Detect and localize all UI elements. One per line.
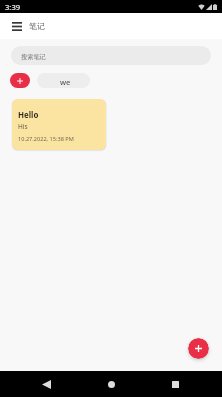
- staticText: we: [60, 77, 71, 87]
- button[interactable]: we: [37, 73, 90, 88]
- staticText: 笔记: [29, 21, 45, 31]
- staticText: His: [18, 122, 28, 131]
- staticText: 10.27.2022, 15:38 PM: [18, 135, 74, 143]
- button[interactable]: Add note: [188, 338, 209, 359]
- button[interactable]: Add category: [10, 73, 30, 88]
- button[interactable]: 搜索笔记: [11, 46, 211, 65]
- button[interactable]: Recents: [155, 371, 195, 397]
- staticText: 搜索笔记: [21, 53, 46, 61]
- button[interactable]: Back: [26, 371, 66, 397]
- button[interactable]: Home: [91, 371, 131, 397]
- button[interactable]: Hello: [12, 99, 106, 150]
- staticText: 3:39: [5, 2, 21, 12]
- staticText: Hello: [18, 110, 39, 121]
- button[interactable]: Menu: [6, 13, 28, 39]
